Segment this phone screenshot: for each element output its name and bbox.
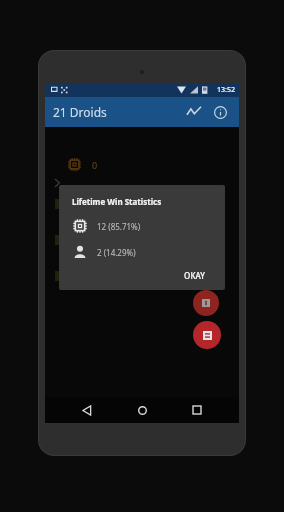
staticText: 21 Droids xyxy=(53,104,183,120)
button[interactable]: Back xyxy=(74,397,100,423)
button[interactable]: Deal one card xyxy=(193,290,219,316)
staticText: Lifetime Win Statistics xyxy=(72,196,162,207)
button[interactable]: Recent apps xyxy=(184,397,210,423)
button[interactable]: Deal two cards xyxy=(193,321,221,349)
button[interactable]: Home xyxy=(129,397,155,423)
button[interactable]: OKAY xyxy=(177,267,212,284)
staticText: 2 (14.29%) xyxy=(97,247,136,258)
staticText: 0 xyxy=(92,159,98,171)
staticText: 12 (85.71%) xyxy=(97,221,141,232)
staticText: 13:52 xyxy=(217,85,235,95)
button[interactable]: Info xyxy=(209,101,231,123)
staticText: OKAY xyxy=(184,270,205,281)
button[interactable]: Statistics xyxy=(183,101,205,123)
